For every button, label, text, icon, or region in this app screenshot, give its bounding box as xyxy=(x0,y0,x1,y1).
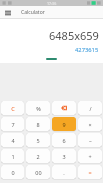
button[interactable]: 1 xyxy=(1,149,24,163)
button[interactable]: 8 xyxy=(26,117,50,131)
button[interactable]: Backspace xyxy=(52,101,76,115)
button[interactable]: 4 xyxy=(1,133,24,147)
staticText: / xyxy=(89,105,92,112)
staticText: 0 xyxy=(11,169,15,176)
button[interactable]: % xyxy=(26,101,50,115)
button[interactable]: = xyxy=(78,165,102,179)
button[interactable]: 9 xyxy=(52,117,76,131)
staticText: 5 xyxy=(36,137,40,144)
staticText: 6485x659 xyxy=(49,28,99,43)
button[interactable]: 7 xyxy=(1,117,24,131)
button[interactable]: . xyxy=(52,165,76,179)
staticText: . xyxy=(63,169,65,176)
staticText: % xyxy=(36,105,41,112)
staticText: 8 xyxy=(36,121,40,128)
button[interactable]: 00 xyxy=(26,165,50,179)
button[interactable]: 6 xyxy=(52,133,76,147)
button[interactable]: 0 xyxy=(1,165,24,179)
staticText: 00 xyxy=(35,169,42,176)
button[interactable]: + xyxy=(78,149,102,163)
button[interactable]: – xyxy=(78,133,102,147)
staticText: Calculator xyxy=(21,9,45,16)
staticText: 2 xyxy=(36,153,40,160)
button[interactable]: / xyxy=(78,101,102,115)
button[interactable]: C xyxy=(1,101,24,115)
staticText: 6 xyxy=(62,137,66,144)
button[interactable]: 2 xyxy=(26,149,50,163)
staticText: = xyxy=(88,169,92,176)
staticText: – xyxy=(89,137,92,144)
button[interactable]: 3 xyxy=(52,149,76,163)
button[interactable]: 5 xyxy=(26,133,50,147)
staticText: 17:36 xyxy=(47,1,57,6)
staticText: × xyxy=(88,121,92,128)
staticText: C xyxy=(11,105,15,112)
staticText: 3 xyxy=(62,153,66,160)
staticText: + xyxy=(88,153,92,160)
staticText: 4273615 xyxy=(75,46,99,54)
staticText: 7 xyxy=(11,121,15,128)
staticText: 1 xyxy=(11,153,15,160)
button[interactable]: × xyxy=(78,117,102,131)
staticText: 4 xyxy=(11,137,15,144)
staticText: 9 xyxy=(62,121,66,128)
button[interactable]: Menu xyxy=(2,7,13,18)
